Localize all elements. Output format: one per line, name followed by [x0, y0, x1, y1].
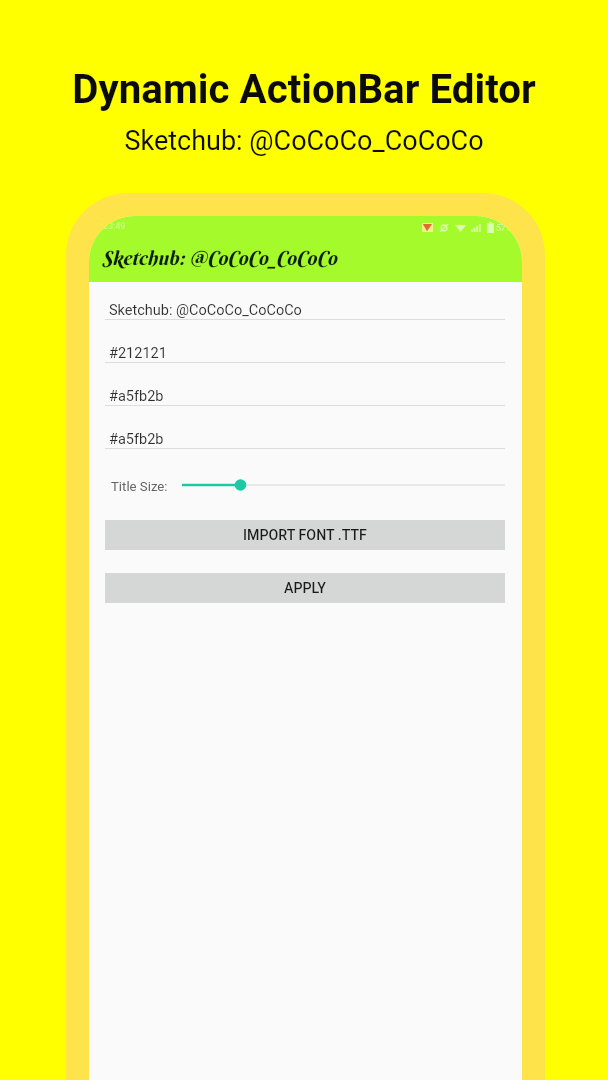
- button[interactable]: #a5fb2b: [105, 425, 505, 449]
- staticText: Sketchub: @CoCoCo_CoCoCo: [0, 125, 608, 157]
- button[interactable]: Title Size:: [105, 474, 505, 496]
- staticText: 23:49: [103, 221, 126, 232]
- other: Wi-Fi: [455, 223, 466, 232]
- button[interactable]: Sketchub: @CoCoCo_CoCoCo: [89, 239, 522, 282]
- button[interactable]: #a5fb2b: [105, 382, 505, 406]
- other: Battery: [487, 222, 494, 233]
- staticText: 57%: [496, 223, 512, 233]
- staticText: Sketchub: @CoCoCo_CoCoCo: [109, 302, 302, 319]
- other: Notification: [422, 223, 433, 232]
- staticText: Dynamic ActionBar Editor: [0, 66, 608, 113]
- button[interactable]: IMPORT FONT .TTF: [105, 520, 505, 550]
- button[interactable]: Sketchub: @CoCoCo_CoCoCo: [105, 296, 505, 320]
- button[interactable]: #212121: [105, 339, 505, 363]
- staticText: Title Size:: [111, 479, 168, 494]
- staticText: #a5fb2b: [109, 431, 164, 448]
- button[interactable]: APPLY: [105, 573, 505, 603]
- staticText: #a5fb2b: [109, 388, 164, 405]
- other: Silent mode: [439, 223, 449, 233]
- staticText: APPLY: [284, 580, 326, 597]
- staticText: IMPORT FONT .TTF: [243, 527, 367, 544]
- staticText: #212121: [109, 345, 167, 362]
- other: Status icons: [422, 221, 512, 234]
- other: Mobile signal: [471, 223, 481, 232]
- staticText: Sketchub: @CoCoCo_CoCoCo: [102, 246, 337, 270]
